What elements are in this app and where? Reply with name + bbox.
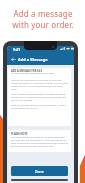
staticText: Here to build a solid appreciate to reci… xyxy=(11,93,68,102)
staticText: Add a Message xyxy=(18,57,48,62)
staticText: Choose it by hand being a choice we do f… xyxy=(11,79,68,91)
staticText: Add a message xyxy=(13,8,73,19)
button[interactable]: Back xyxy=(7,54,74,65)
button[interactable]: ADD A MESSAGE FOR $4.0 xyxy=(8,68,71,126)
staticText: ADD A MESSAGE FOR $4.0 xyxy=(11,69,43,72)
staticText: Your message will be printed on A5 white… xyxy=(11,136,68,148)
staticText: with your order. xyxy=(12,19,74,30)
staticText: Keep up your free to write to you most w… xyxy=(11,104,68,110)
staticText: Done xyxy=(35,169,44,174)
staticText: PLEASE NOTE xyxy=(11,132,28,135)
staticText: 9:41 xyxy=(13,47,21,52)
staticText: Include a special message with your orde… xyxy=(11,72,55,75)
button[interactable]: Done xyxy=(11,166,68,176)
button[interactable]: PLEASE NOTE xyxy=(8,130,71,152)
other: Back xyxy=(11,57,16,62)
